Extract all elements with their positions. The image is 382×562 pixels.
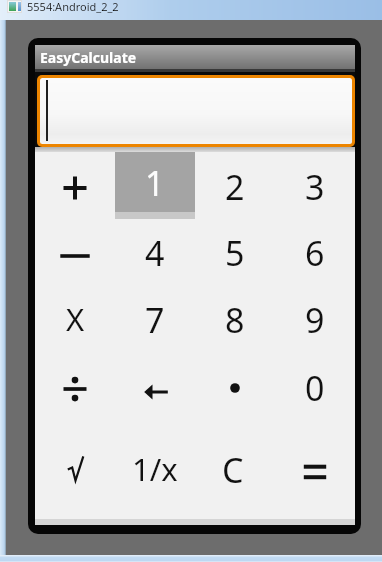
staticText: 6 — [305, 230, 325, 276]
button[interactable]: 2 — [195, 154, 275, 220]
button[interactable]: 0 — [275, 355, 355, 421]
button[interactable] — [35, 356, 115, 422]
button[interactable]: 4 — [115, 220, 195, 286]
button[interactable]: C — [193, 437, 273, 503]
staticText: 5554:Android_2_2 — [27, 0, 119, 14]
button[interactable] — [37, 75, 355, 147]
button[interactable]: 3 — [275, 154, 355, 220]
staticText: 2 — [225, 164, 245, 210]
button[interactable]: 8 — [195, 287, 275, 353]
staticText: 4 — [145, 230, 165, 276]
button[interactable] — [36, 436, 116, 502]
staticText: 0 — [305, 365, 325, 411]
staticText: 5 — [225, 230, 245, 276]
button[interactable] — [35, 223, 115, 289]
button[interactable] — [116, 359, 196, 425]
button[interactable]: 6 — [275, 220, 355, 286]
staticText: 1 — [145, 160, 165, 206]
button[interactable]: 1 — [115, 150, 195, 216]
staticText: 7 — [145, 297, 165, 343]
button[interactable]: 5 — [195, 220, 275, 286]
button[interactable]: 9 — [275, 287, 355, 353]
staticText: C — [222, 447, 244, 493]
button[interactable]: 7 — [115, 287, 195, 353]
button[interactable]: 1/x — [115, 436, 195, 502]
staticText: 1/x — [132, 448, 178, 490]
button[interactable]: X — [35, 286, 115, 352]
button[interactable] — [35, 155, 115, 221]
staticText: 3 — [305, 164, 325, 210]
staticText: 9 — [305, 297, 325, 343]
staticText: X — [66, 298, 85, 340]
button[interactable] — [275, 439, 355, 505]
staticText: EasyCalculate — [40, 48, 137, 67]
staticText: 8 — [225, 297, 245, 343]
button[interactable] — [195, 355, 275, 421]
